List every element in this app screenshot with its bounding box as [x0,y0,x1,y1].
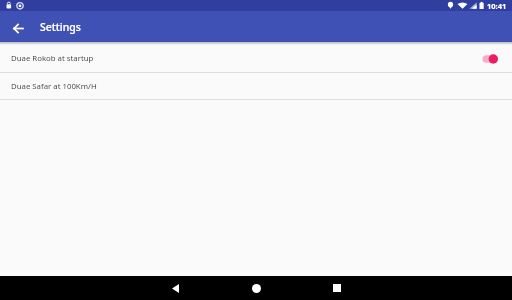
staticText: 10:41 [487,1,507,11]
button[interactable]: Duae Safar at 100Km/H [0,73,512,99]
button[interactable] [3,13,34,44]
staticText: Duae Safar at 100Km/H [11,81,97,92]
staticText: Settings [40,20,81,34]
button[interactable]: Duae Rokob at startup [0,45,512,72]
button[interactable] [244,276,268,300]
button[interactable] [163,276,187,300]
staticText: Duae Rokob at startup [11,53,94,64]
button[interactable] [482,52,498,66]
button[interactable] [325,276,349,300]
